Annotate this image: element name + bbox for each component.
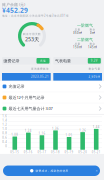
staticText: ¥452.29 — [2, 6, 28, 15]
staticText: 1.44 — [93, 125, 100, 129]
staticText: 1.36 — [52, 127, 59, 130]
staticText: 1.05 — [66, 133, 73, 137]
staticText: 145m³ — [88, 45, 97, 49]
staticText: 充值 — [40, 59, 46, 62]
staticText: 0.8 — [2, 131, 7, 135]
staticText: 剩余可用天数 — [23, 32, 41, 36]
staticText: 0m³ — [90, 31, 95, 35]
staticText: 1.24 — [25, 129, 32, 133]
staticText: 1.08 — [11, 133, 18, 136]
staticText: 05-16 — [24, 150, 33, 154]
staticText: 最近七天用气量合计 3.07 — [9, 106, 53, 111]
staticText: 2,605m³ — [88, 75, 100, 78]
button[interactable]: 最近12个月用气记录 — [0, 92, 104, 103]
staticText: 1.0 — [2, 127, 7, 131]
staticText: 05-17 — [37, 150, 46, 154]
staticText: 1.4 — [2, 119, 7, 122]
staticText: 05-19 — [65, 150, 74, 154]
staticText: 05-15 — [10, 150, 19, 154]
staticText: 总量 — [74, 28, 80, 31]
staticText: 05-18 — [51, 150, 60, 154]
staticText: 0 — [5, 144, 7, 148]
staticText: 剩余 — [89, 42, 95, 45]
button[interactable]: 充值 — [36, 58, 49, 64]
staticText: 剩余 — [89, 28, 95, 31]
staticText: 缴费成功，感谢您的使用 — [33, 169, 68, 172]
staticText: ✕ — [95, 169, 97, 172]
staticText: 2023-05-21 — [31, 75, 49, 78]
button[interactable]: 充值记录 — [0, 81, 104, 92]
staticText: 05-21 — [92, 150, 101, 154]
staticText: 1.2 — [2, 123, 7, 126]
staticText: 最近12个月用气记录 — [9, 95, 45, 100]
staticText: 0.4 — [2, 140, 7, 144]
staticText: 账户余额 (元) — [2, 2, 25, 7]
staticText: 总量 — [74, 42, 80, 45]
staticText: 缴费记录 — [4, 58, 20, 63]
staticText: 一阶燃气 — [77, 23, 93, 28]
staticText: 05-20 — [78, 150, 87, 154]
staticText: 350m³ — [73, 31, 82, 35]
staticText: 9.2V — [91, 59, 98, 62]
staticText: 0.6 — [2, 136, 7, 139]
staticText: 地址：北京市朝阳区小关北里甲2号楼3单元401室 — [2, 14, 69, 17]
button[interactable]: 最近七天用气量合计 3.07 — [0, 103, 104, 114]
staticText: 气表电量 — [55, 58, 71, 63]
staticText: 150m³ — [73, 45, 82, 49]
staticText: 查询缴费账单 — [31, 67, 49, 70]
button[interactable]: 缴费成功，感谢您的使用 — [3, 165, 100, 176]
staticText: 1.16 — [38, 132, 45, 135]
staticText: 1.26 — [79, 129, 86, 132]
button[interactable]: 9.2V — [88, 58, 101, 64]
staticText: 充值记录 — [9, 84, 25, 89]
staticText: 1.6 — [2, 114, 7, 118]
staticText: 253天 — [25, 36, 39, 43]
staticText: 二阶燃气 — [77, 37, 93, 42]
staticText: 剩余气量 — [88, 67, 100, 70]
